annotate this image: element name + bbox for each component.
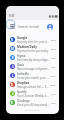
staticText: Sun	[51, 101, 56, 104]
staticText: LinkedIn	[17, 72, 30, 76]
button[interactable]: Open navigation menu	[6, 20, 59, 35]
staticText: M	[11, 47, 14, 51]
staticText: F	[12, 56, 14, 60]
staticText: Spotify	[17, 90, 27, 94]
button[interactable]: Open navigation menu	[8, 22, 17, 31]
button[interactable]: D	[10, 98, 56, 107]
button[interactable]: S	[10, 89, 56, 98]
button[interactable]: L	[10, 71, 56, 80]
button[interactable]: F	[10, 53, 56, 62]
staticText: 5 new jobs match your profile	[17, 76, 49, 80]
staticText: Mon	[50, 74, 56, 77]
staticText: D	[11, 83, 14, 87]
staticText: Figma	[17, 54, 26, 58]
staticText: L	[12, 74, 14, 78]
staticText: D	[11, 101, 14, 105]
staticText: Tue	[51, 56, 56, 59]
staticText: Top stories for you today	[17, 49, 49, 53]
staticText: Dropbox	[17, 81, 30, 85]
staticText: Mon	[50, 83, 56, 86]
staticText: Tue	[51, 65, 56, 68]
button[interactable]: D	[10, 80, 56, 89]
staticText: S	[12, 92, 14, 96]
button[interactable]: G	[10, 35, 56, 44]
staticText: 9:41	[9, 14, 15, 18]
staticText: New message in #general channel	[17, 67, 50, 71]
staticText: S	[12, 65, 14, 69]
staticText: Search in mail	[18, 25, 39, 29]
staticText: 9:41	[51, 38, 56, 41]
staticText: Keep your 42 day streak alive	[17, 103, 50, 107]
staticText: Slack	[17, 63, 25, 67]
staticText: Your Discover Weekly is ready	[17, 94, 50, 98]
button[interactable]: M	[10, 44, 56, 53]
button[interactable]: Account	[47, 24, 53, 30]
staticText: G	[11, 38, 14, 42]
staticText: 8:12	[51, 47, 56, 50]
staticText: Your weekly design digest is here	[17, 58, 50, 62]
staticText: Medium Daily	[17, 45, 37, 49]
staticText: Google	[17, 36, 28, 40]
staticText: Security alert for your account	[17, 40, 50, 44]
staticText: Storage almost full — 95% used	[17, 85, 49, 89]
staticText: Duolingo	[17, 99, 30, 103]
staticText: Sun	[51, 92, 56, 95]
button[interactable]: S	[10, 62, 56, 71]
